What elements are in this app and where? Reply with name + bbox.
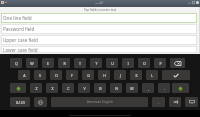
- button[interactable]: American English: [51, 97, 148, 107]
- button[interactable]: &123: [10, 97, 30, 107]
- button[interactable]: L: [146, 70, 158, 80]
- staticText: H: [103, 73, 106, 78]
- button[interactable]: P: [154, 58, 166, 68]
- button[interactable]: One line field: [1, 13, 197, 23]
- staticText: R: [63, 61, 66, 66]
- button[interactable]: Shift: [172, 83, 189, 93]
- staticText: P: [159, 61, 162, 66]
- staticText: Y: [95, 61, 98, 66]
- button[interactable]: T: [74, 58, 86, 68]
- staticText: C: [67, 86, 70, 91]
- button[interactable]: Password field: [1, 24, 197, 34]
- staticText: One line field: [3, 15, 32, 21]
- button[interactable]: Upper case field: [1, 35, 197, 45]
- staticText: S: [39, 73, 41, 78]
- staticText: O: [143, 61, 146, 66]
- button[interactable]: D: [50, 70, 62, 80]
- staticText: 10:47: [95, 1, 102, 4]
- button[interactable]: .: [152, 97, 165, 107]
- button[interactable]: Maximize: [192, 1, 195, 4]
- button[interactable]: Enter: [162, 70, 190, 80]
- staticText: U: [111, 61, 114, 66]
- button[interactable]: .: [158, 83, 170, 93]
- staticText: W: [30, 61, 34, 66]
- staticText: D: [55, 73, 58, 78]
- button[interactable]: Y: [90, 58, 102, 68]
- staticText: Password field: [3, 26, 35, 32]
- button[interactable]: V: [78, 83, 90, 93]
- staticText: I: [127, 61, 129, 66]
- staticText: M: [130, 86, 134, 91]
- staticText: N: [115, 86, 118, 91]
- staticText: ,: [148, 86, 149, 91]
- staticText: Z: [35, 86, 38, 91]
- staticText: Tap fields to enter text: [84, 8, 117, 12]
- staticText: American English: [87, 100, 113, 104]
- staticText: J: [120, 73, 121, 78]
- button[interactable]: G: [82, 70, 94, 80]
- staticText: &123: [16, 100, 25, 105]
- button[interactable]: Hide keyboard: [185, 97, 198, 107]
- staticText: Upper case field: [3, 37, 38, 43]
- button[interactable]: F: [66, 70, 78, 80]
- button[interactable]: S: [34, 70, 46, 80]
- button[interactable]: K: [130, 70, 142, 80]
- button[interactable]: Change language: [34, 97, 47, 107]
- button[interactable]: R: [58, 58, 70, 68]
- button[interactable]: App icon: [1, 1, 4, 4]
- button[interactable]: J: [114, 70, 126, 80]
- staticText: K: [135, 73, 138, 78]
- button[interactable]: N: [110, 83, 122, 93]
- button[interactable]: O: [138, 58, 150, 68]
- button[interactable]: Minimize: [188, 2, 191, 4]
- button[interactable]: U: [106, 58, 118, 68]
- button[interactable]: E: [42, 58, 54, 68]
- button[interactable]: H: [98, 70, 110, 80]
- staticText: G: [87, 73, 90, 78]
- button[interactable]: C: [62, 83, 74, 93]
- staticText: A: [23, 73, 26, 78]
- staticText: T: [79, 61, 81, 66]
- button[interactable]: Backspace: [170, 58, 185, 68]
- staticText: Lower case field: [3, 47, 38, 53]
- button[interactable]: W: [26, 58, 38, 68]
- staticText: V: [83, 86, 86, 91]
- staticText: .: [164, 86, 165, 91]
- button[interactable]: M: [126, 83, 138, 93]
- staticText: L: [151, 73, 153, 78]
- button[interactable]: ,: [142, 83, 154, 93]
- button[interactable]: Q: [10, 58, 22, 68]
- staticText: F: [71, 73, 73, 78]
- staticText: E: [47, 61, 49, 66]
- staticText: X: [51, 86, 54, 91]
- staticText: Q: [15, 61, 18, 66]
- button[interactable]: A: [18, 70, 30, 80]
- button[interactable]: Next field: [169, 97, 181, 107]
- button[interactable]: Close: [196, 1, 199, 4]
- button[interactable]: Lower case field: [1, 46, 197, 53]
- button[interactable]: B: [94, 83, 106, 93]
- button[interactable]: X: [46, 83, 58, 93]
- staticText: .: [158, 100, 159, 105]
- button[interactable]: I: [122, 58, 134, 68]
- button[interactable]: Up: [5, 1, 7, 3]
- button[interactable]: Z: [30, 83, 42, 93]
- button[interactable]: Shift: [10, 83, 26, 93]
- staticText: B: [99, 86, 102, 91]
